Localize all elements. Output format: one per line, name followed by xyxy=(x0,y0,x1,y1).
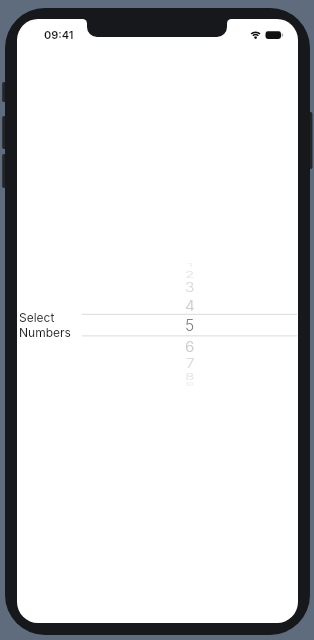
staticText: 8 xyxy=(185,371,195,382)
staticText: Select Numbers xyxy=(19,310,71,340)
staticText: 5 xyxy=(185,316,195,335)
staticText: 4 xyxy=(185,297,195,314)
staticText: 9 xyxy=(185,381,195,388)
staticText: 09:41 xyxy=(44,28,74,41)
button[interactable]: Select Numbers xyxy=(19,310,89,342)
button[interactable] xyxy=(82,264,297,389)
staticText: 1 xyxy=(187,262,194,269)
staticText: 7 xyxy=(186,356,195,371)
staticText: 2 xyxy=(185,269,195,280)
staticText: 3 xyxy=(185,280,195,295)
staticText: 6 xyxy=(185,338,195,355)
